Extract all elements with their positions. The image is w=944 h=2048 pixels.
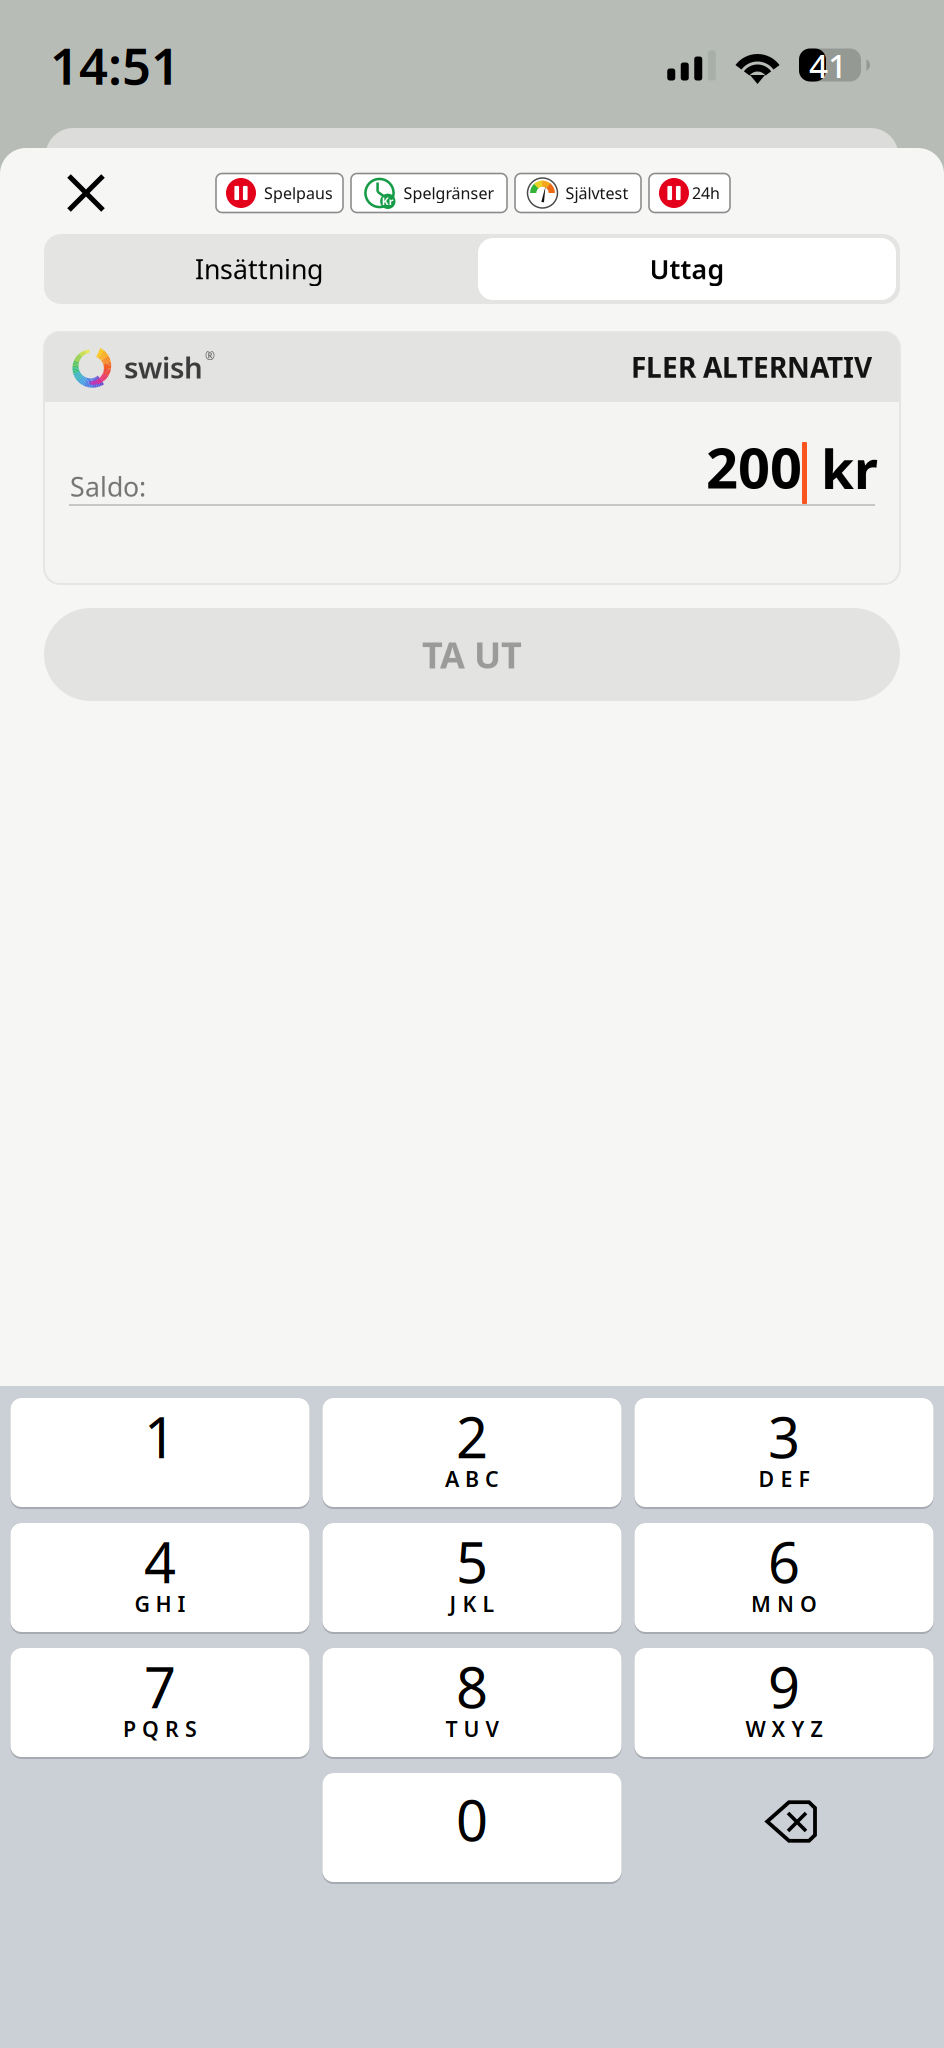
staticText: 1 (144, 1399, 176, 1474)
button[interactable]: Kr (351, 173, 507, 212)
staticText: 9 (768, 1649, 800, 1724)
staticText: P Q R S (123, 1715, 197, 1743)
staticText: Kr (382, 194, 394, 208)
staticText: Spelpaus (264, 182, 333, 204)
button[interactable]: 8 (322, 1648, 621, 1759)
staticText: D E F (758, 1465, 809, 1493)
staticText: Insättning (195, 251, 323, 287)
button[interactable]: Stäng (0, 148, 146, 238)
staticText: J K L (449, 1590, 494, 1618)
button[interactable]: FLER ALTERNATIV (631, 332, 900, 402)
button[interactable]: Självtest (515, 173, 641, 212)
staticText: Uttag (649, 251, 724, 287)
staticText: FLER ALTERNATIV (631, 348, 872, 386)
staticText: A B C (445, 1465, 499, 1493)
button[interactable]: 6 (634, 1523, 933, 1634)
staticText: swish (124, 347, 203, 386)
staticText: 3 (768, 1399, 800, 1474)
button[interactable]: 9 (634, 1648, 933, 1759)
button[interactable]: 0 (322, 1773, 621, 1884)
button[interactable]: Insättning (44, 234, 474, 304)
button[interactable]: TA UT (44, 608, 900, 701)
button[interactable]: Spelpaus (216, 173, 343, 212)
staticText: W X Y Z (745, 1715, 822, 1743)
button[interactable]: 24h (649, 173, 730, 212)
staticText: 7 (144, 1649, 176, 1724)
staticText: ® (205, 347, 215, 363)
staticText: T U V (445, 1715, 498, 1743)
staticText: 4 (144, 1524, 176, 1599)
button[interactable]: 4 (10, 1523, 309, 1634)
staticText: 8 (456, 1649, 488, 1724)
staticText: 14:51 (50, 31, 180, 99)
button[interactable]: 3 (634, 1398, 933, 1509)
staticText: M N O (751, 1590, 817, 1618)
button[interactable]: 7 (10, 1648, 309, 1759)
button[interactable]: 2 (322, 1398, 621, 1509)
staticText: Spelgränser (403, 182, 494, 204)
staticText: 200 (706, 430, 802, 504)
staticText: G H I (134, 1590, 185, 1618)
staticText: 6 (768, 1524, 800, 1599)
staticText: 2 (456, 1399, 488, 1474)
button[interactable]: 5 (322, 1523, 621, 1634)
staticText: 0 (456, 1782, 488, 1857)
staticText: TA UT (422, 631, 522, 678)
staticText: Saldo: (70, 469, 146, 504)
staticText: 5 (456, 1524, 488, 1599)
staticText: 24h (692, 182, 720, 204)
staticText: kr (807, 433, 878, 504)
button[interactable]: Radera (634, 1774, 933, 1883)
button[interactable]: Uttag (474, 234, 900, 304)
staticText: Självtest (565, 182, 628, 204)
staticText: 41 (809, 43, 847, 87)
button[interactable]: 1 (10, 1398, 309, 1509)
